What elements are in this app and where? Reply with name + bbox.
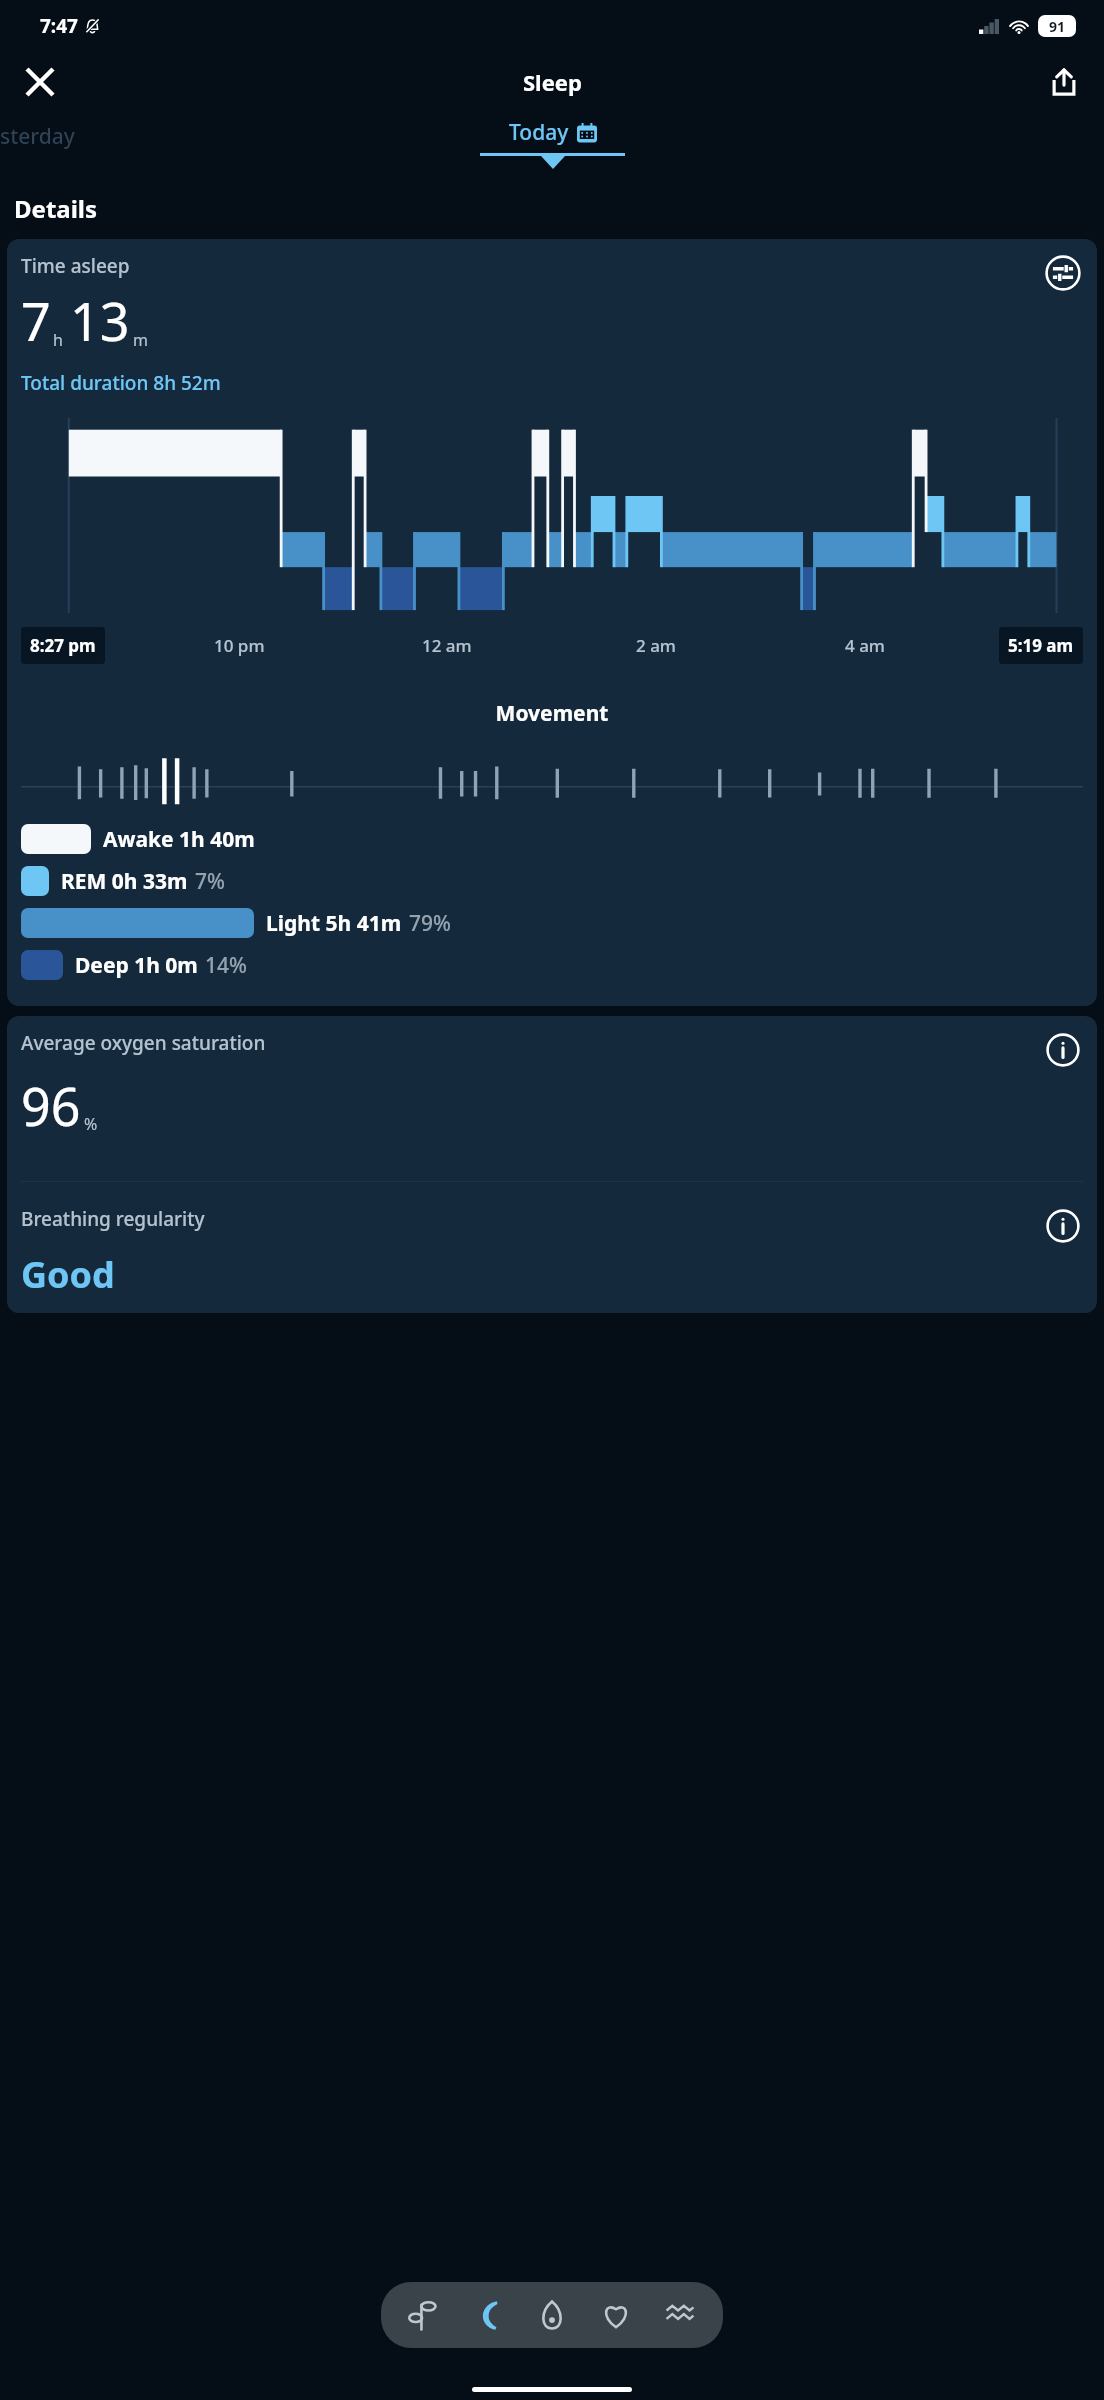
staticText: 4 am (845, 634, 885, 657)
staticText: 14% (205, 951, 247, 980)
staticText: 10 pm (214, 634, 265, 657)
button[interactable]: Adjust sleep (1043, 253, 1083, 293)
button[interactable]: Info (1043, 1206, 1083, 1246)
button[interactable]: Info (1043, 1030, 1083, 1070)
staticText: Today (509, 118, 569, 147)
staticText: 96 (21, 1070, 81, 1141)
staticText: 8:27 pm (30, 634, 96, 657)
button[interactable]: Time asleep (7, 239, 1097, 1006)
staticText: % (84, 1113, 98, 1135)
staticText: 91 (1049, 17, 1066, 36)
staticText: Time asleep (21, 253, 130, 279)
staticText: 7 (21, 285, 51, 356)
staticText: 12 am (422, 634, 472, 657)
staticText: 2 am (636, 634, 676, 657)
staticText: Movement (21, 699, 1083, 728)
button[interactable]: Body (403, 2294, 445, 2336)
staticText: 7% (195, 867, 225, 896)
button[interactable]: Average oxygen saturation (7, 1016, 1097, 1313)
button[interactable]: Share (1040, 58, 1088, 106)
button[interactable]: Heart (595, 2294, 637, 2336)
staticText: 13 (70, 285, 130, 356)
button[interactable]: Today (497, 112, 609, 153)
staticText: REM 0h 33m (61, 867, 188, 896)
staticText: 7:47 (40, 13, 78, 39)
staticText: h (53, 329, 63, 351)
staticText: Awake 1h 40m (103, 825, 255, 854)
staticText: Average oxygen saturation (21, 1030, 1043, 1056)
staticText: Deep 1h 0m (75, 951, 198, 980)
button[interactable]: Close (16, 58, 64, 106)
staticText: Sleep (523, 67, 582, 97)
staticText: Breathing regularity (21, 1206, 1043, 1232)
button[interactable]: Stress (659, 2294, 701, 2336)
staticText: Good (21, 1250, 115, 1299)
button[interactable]: Energy (531, 2294, 573, 2336)
button[interactable]: Sleep (467, 2294, 509, 2336)
staticText: Light 5h 41m (266, 909, 402, 938)
staticText: 5:19 am (1008, 634, 1074, 657)
staticText: m (133, 329, 148, 351)
staticText: 79% (409, 909, 451, 938)
staticText: sterday (0, 122, 75, 151)
staticText: Total duration 8h 52m (21, 370, 221, 396)
staticText: Details (14, 192, 98, 225)
